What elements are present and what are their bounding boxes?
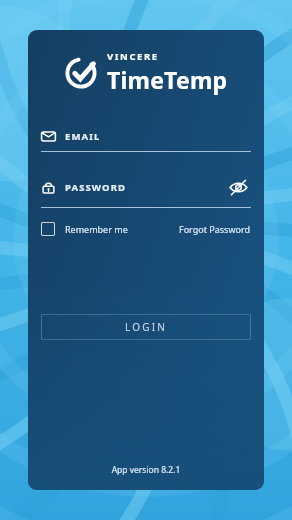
staticText: TimeTemp bbox=[107, 64, 228, 95]
button[interactable]: PASSWORD bbox=[41, 174, 251, 208]
staticText: PASSWORD bbox=[65, 181, 127, 194]
staticText: VINCERE bbox=[107, 50, 159, 63]
button[interactable]: LOGIN bbox=[41, 314, 251, 340]
staticText: App version 8.2.1 bbox=[28, 464, 264, 476]
staticText: Remember me bbox=[65, 223, 128, 235]
staticText: EMAIL bbox=[65, 130, 101, 143]
button[interactable]: Show password bbox=[225, 174, 251, 200]
staticText: LOGIN bbox=[125, 320, 168, 334]
button[interactable]: Forgot Password bbox=[179, 223, 251, 235]
button[interactable]: Remember me bbox=[41, 222, 128, 236]
button[interactable]: EMAIL bbox=[41, 129, 251, 152]
staticText: Forgot Password bbox=[179, 223, 251, 235]
